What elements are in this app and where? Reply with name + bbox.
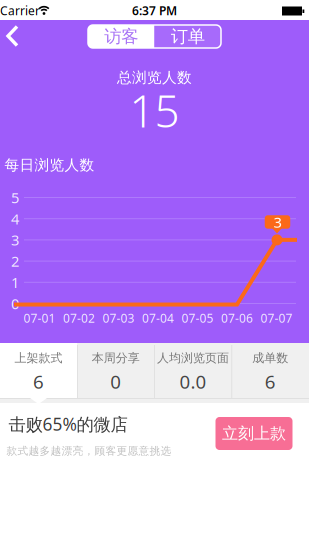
button[interactable]: 访客 [88, 25, 154, 48]
staticText: 07-05 [181, 310, 213, 326]
staticText: 访客 [104, 26, 138, 47]
staticText: 5 [11, 188, 19, 207]
button[interactable]: 订单 [154, 25, 221, 48]
staticText: 07-06 [221, 310, 253, 326]
button[interactable]: 本周分享 [77, 343, 154, 398]
staticText: 6 [265, 369, 276, 394]
staticText: 击败65%的微店 [8, 412, 127, 435]
staticText: Carrier [0, 2, 40, 18]
staticText: 2 [11, 251, 19, 271]
staticText: 15 [129, 81, 179, 140]
staticText: 3 [273, 212, 281, 232]
staticText: 0 [110, 369, 121, 394]
staticText: 07-07 [260, 310, 292, 326]
button[interactable]: 成单数 [232, 343, 309, 398]
button[interactable]: 立刻上款 [215, 417, 292, 450]
staticText: 人均浏览页面 [157, 351, 229, 365]
staticText: 总浏览人数 [117, 68, 192, 86]
button[interactable]: 上架款式 [0, 343, 77, 398]
staticText: 6 [33, 369, 44, 394]
staticText: 07-04 [142, 310, 174, 326]
button[interactable]: Back [0, 18, 30, 53]
staticText: 0.0 [180, 369, 207, 394]
staticText: 3 [11, 230, 19, 250]
staticText: 07-03 [102, 310, 134, 326]
button[interactable]: 人均浏览页面 [154, 343, 232, 398]
staticText: 07-01 [23, 310, 55, 326]
staticText: 每日浏览人数 [4, 156, 94, 174]
staticText: 立刻上款 [222, 424, 286, 443]
staticText: 本周分享 [92, 351, 140, 365]
staticText: 0 [11, 294, 19, 313]
staticText: 上架款式 [15, 351, 63, 365]
staticText: 款式越多越漂亮，顾客更愿意挑选 [6, 444, 171, 457]
staticText: 07-02 [63, 310, 95, 326]
staticText: 成单数 [252, 351, 288, 365]
staticText: 1 [11, 273, 19, 292]
staticText: 订单 [171, 26, 205, 47]
staticText: 6:37 PM [132, 2, 177, 18]
staticText: 4 [11, 209, 19, 228]
